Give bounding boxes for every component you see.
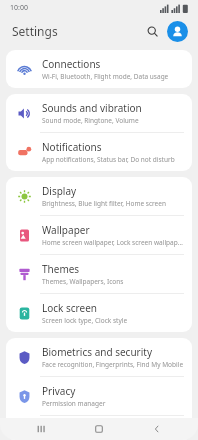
staticText: Settings [12, 23, 58, 39]
staticText: Connections [42, 57, 101, 71]
staticText: Themes, Wallpapers, Icons [42, 277, 124, 286]
staticText: Sound mode, Ringtone, Volume [42, 116, 139, 125]
button[interactable]: Privacy [6, 377, 192, 415]
staticText: Wallpaper [42, 223, 90, 237]
button[interactable]: Location [6, 416, 192, 440]
staticText: Brightness, Blue light filter, Home scre… [42, 199, 166, 208]
button[interactable]: Account [167, 21, 188, 42]
button[interactable]: Biometrics and security [6, 338, 192, 376]
staticText: Notifications [42, 140, 102, 154]
staticText: Permissions, Location services [42, 431, 135, 440]
button[interactable]: Search [141, 20, 163, 42]
staticText: Screen lock type, Clock style [42, 316, 128, 325]
button[interactable]: Themes [6, 255, 192, 293]
staticText: Privacy [42, 384, 76, 398]
button[interactable]: Notifications [6, 133, 192, 171]
staticText: Display [42, 184, 77, 198]
staticText: Permission manager [42, 399, 106, 408]
staticText: Lock screen [42, 301, 98, 315]
staticText: Sounds and vibration [42, 101, 142, 115]
staticText: Wi-Fi, Bluetooth, Flight mode, Data usag… [42, 72, 169, 81]
staticText: Home screen wallpaper, Lock screen wallp… [42, 238, 184, 247]
button[interactable]: Sounds and vibration [6, 94, 192, 132]
button[interactable]: Recents [24, 418, 58, 440]
staticText: Location [42, 416, 83, 430]
button[interactable]: Display [6, 177, 192, 215]
button[interactable]: Back [140, 418, 174, 440]
staticText: Face recognition, Fingerprints, Find My … [42, 360, 184, 369]
staticText: Biometrics and security [42, 345, 152, 359]
staticText: Themes [42, 262, 80, 276]
button[interactable]: Home [82, 418, 116, 440]
staticText: App notifications, Status bar, Do not di… [42, 155, 175, 164]
button[interactable]: Wallpaper [6, 216, 192, 254]
button[interactable]: Connections [6, 50, 192, 88]
staticText: 10:00 [10, 3, 28, 13]
button[interactable]: Lock screen [6, 294, 192, 332]
